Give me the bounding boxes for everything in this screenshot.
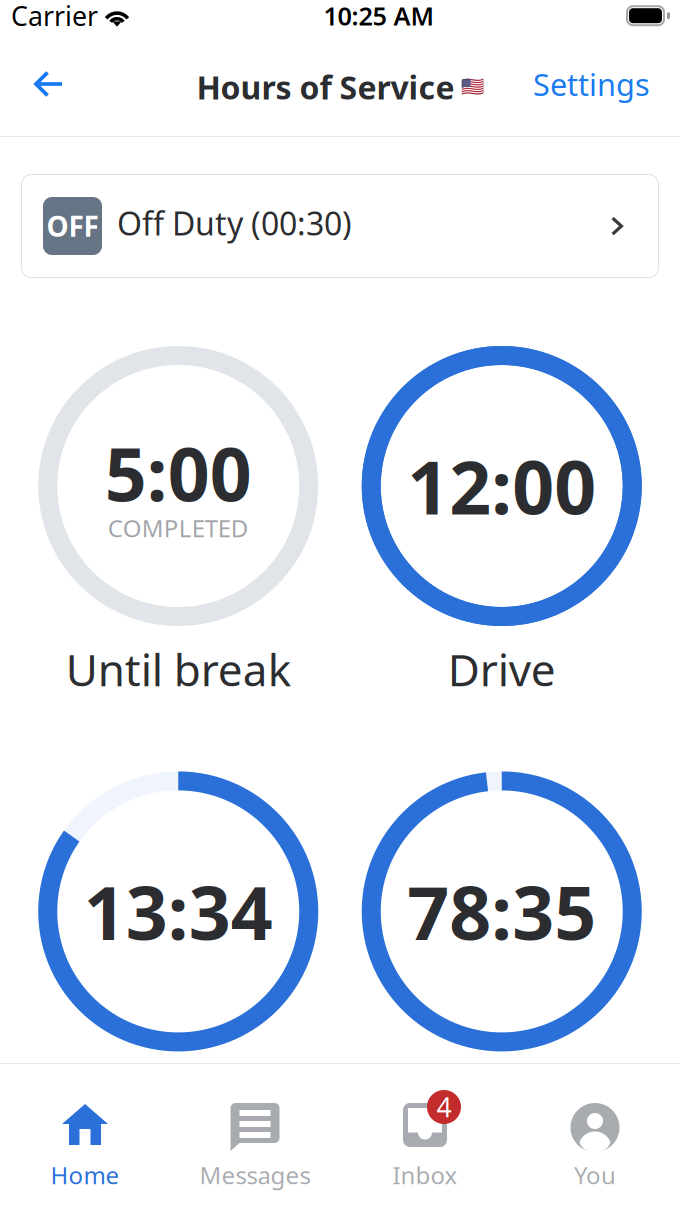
staticText: 4 xyxy=(436,1089,451,1125)
staticText: Home xyxy=(50,1159,119,1191)
button[interactable]: Settings xyxy=(513,49,680,119)
staticText: Carrier xyxy=(11,0,98,33)
button[interactable]: You xyxy=(510,1064,680,1208)
staticText: 10:25 AM xyxy=(323,0,434,32)
button[interactable]: OFF xyxy=(0,174,680,278)
button[interactable]: 4 xyxy=(340,1064,510,1208)
button[interactable]: Back xyxy=(0,54,84,113)
staticText: Off Duty (00:30) xyxy=(117,202,352,244)
staticText: 🇺🇸 xyxy=(460,76,483,98)
staticText: 5:00 xyxy=(105,424,252,522)
staticText: Settings xyxy=(533,64,650,104)
button[interactable]: Home xyxy=(0,1064,170,1208)
staticText: Inbox xyxy=(392,1159,457,1191)
staticText: Drive xyxy=(448,640,556,698)
button[interactable]: Messages xyxy=(170,1064,340,1208)
staticText: Hours of Service xyxy=(196,66,454,108)
staticText: Messages xyxy=(199,1159,310,1191)
staticText: 78:35 xyxy=(407,863,596,960)
staticText: COMPLETED xyxy=(108,512,249,544)
staticText: 12:00 xyxy=(407,437,596,535)
staticText: You xyxy=(574,1159,616,1191)
staticText: Until break xyxy=(66,640,291,698)
staticText: 13:34 xyxy=(84,863,273,960)
staticText: OFF xyxy=(46,207,98,245)
